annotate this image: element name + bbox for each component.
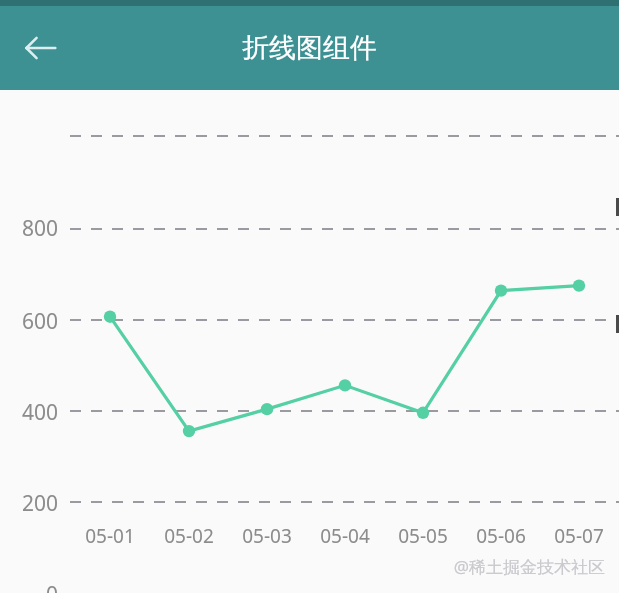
staticText: 05-05 xyxy=(398,523,448,549)
staticText: 05-03 xyxy=(242,523,292,549)
button[interactable]: Back xyxy=(12,20,68,76)
staticText: 05-02 xyxy=(164,523,214,549)
staticText: 05-01 xyxy=(85,523,135,549)
staticText: 05-06 xyxy=(476,523,526,549)
staticText: 0 xyxy=(45,580,58,593)
staticText: 05-07 xyxy=(554,523,604,549)
staticText: 05-04 xyxy=(320,523,370,549)
staticText: 600 xyxy=(21,307,58,333)
staticText: 200 xyxy=(21,489,58,515)
staticText: 400 xyxy=(21,398,58,424)
staticText: 800 xyxy=(21,214,58,240)
staticText: @稀土掘金技术社区 xyxy=(453,555,605,578)
staticText: 折线图组件 xyxy=(242,31,377,65)
